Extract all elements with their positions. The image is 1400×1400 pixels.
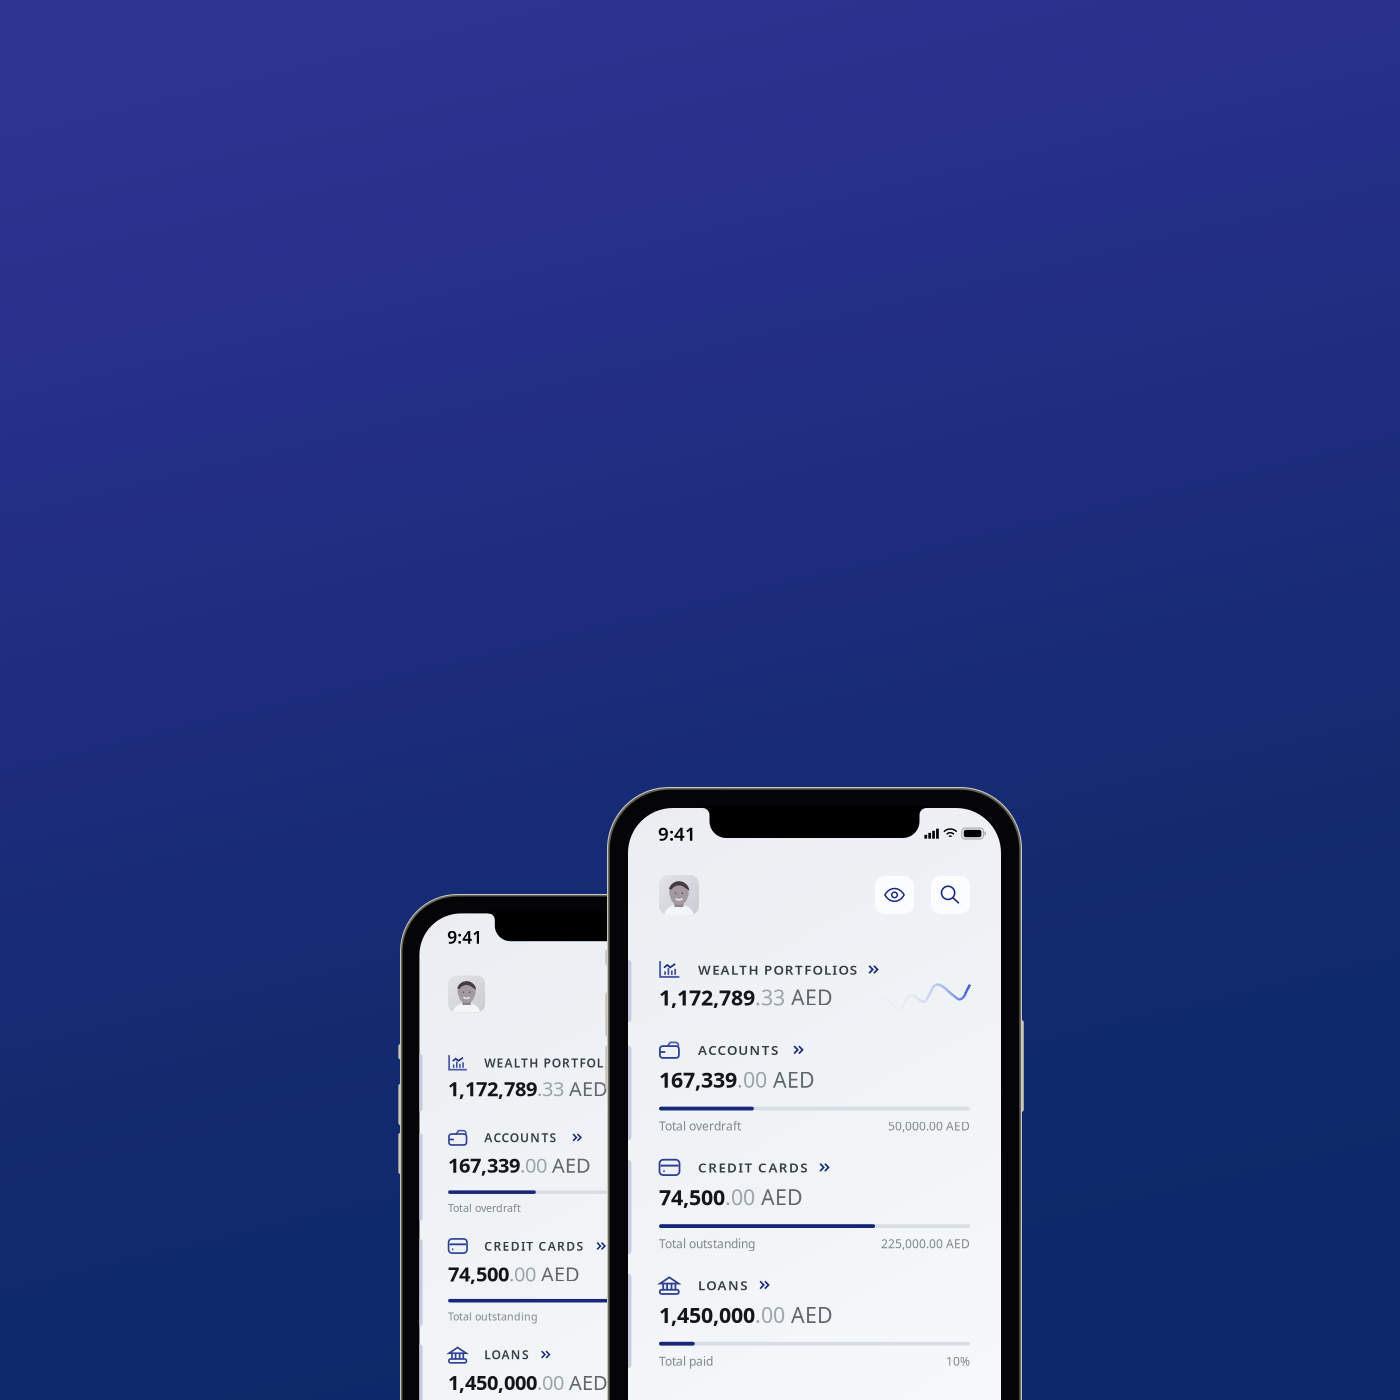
staticText: 9:41 [658, 821, 696, 846]
button[interactable]: WEALTH PORTFOLIOS [628, 915, 1001, 1011]
button[interactable]: CREDIT CARDS [419, 1215, 764, 1323]
staticText: Total outstanding [659, 1235, 755, 1251]
staticText: ACCOUNTS [484, 1129, 557, 1145]
staticText: 1,450,000 [659, 1300, 755, 1329]
staticText: 50,000.00 AED [888, 1118, 970, 1134]
staticText: Total overdraft [448, 1201, 521, 1215]
staticText: 167,339 [659, 1065, 737, 1094]
staticText: .33 [755, 983, 785, 1011]
button[interactable]: LOANS [419, 1323, 764, 1400]
staticText: ACCOUNTS [698, 1041, 778, 1059]
staticText: LOANS [484, 1347, 529, 1362]
button[interactable]: Search [700, 976, 736, 1011]
staticText: .00 [755, 1300, 785, 1329]
staticText: Total overdraft [659, 1118, 741, 1134]
staticText: .33 [537, 1075, 564, 1102]
staticText: .00 [520, 1152, 547, 1178]
staticText: AED [767, 1065, 815, 1094]
staticText: 10% [946, 1353, 970, 1369]
button[interactable]: Profile [448, 975, 485, 1012]
staticText: 1,450,000 [448, 1369, 537, 1395]
staticText: 1,172,789 [448, 1075, 537, 1102]
staticText: Total outstanding [448, 1309, 538, 1324]
staticText: CREDIT CARDS [484, 1238, 583, 1254]
staticText: .00 [537, 1369, 564, 1395]
staticText: 225,000.00 AED [658, 1309, 736, 1324]
staticText: AED [547, 1152, 591, 1178]
staticText: 50,000.00 AED [664, 1201, 736, 1215]
staticText: CREDIT CARDS [698, 1158, 807, 1176]
staticText: .00 [725, 1183, 755, 1211]
staticText: .00 [509, 1260, 536, 1287]
button[interactable]: Search [931, 876, 970, 914]
staticText: 9:41 [447, 925, 482, 948]
button[interactable]: WEALTH PORTFOLIOS [419, 1012, 764, 1102]
staticText: 225,000.00 AED [881, 1235, 970, 1251]
staticText: Total paid [659, 1353, 713, 1369]
staticText: WEALTH PORTFOLIOS [484, 1055, 627, 1071]
staticText: LOANS [698, 1276, 747, 1294]
staticText: 74,500 [448, 1260, 509, 1287]
staticText: .00 [737, 1065, 767, 1094]
staticText: AED [785, 1300, 833, 1329]
staticText: AED [564, 1369, 608, 1395]
button[interactable]: Profile [659, 875, 699, 915]
staticText: AED [755, 1183, 803, 1211]
button[interactable]: Hide balances [875, 876, 914, 914]
button[interactable]: ACCOUNTS [419, 1102, 764, 1215]
staticText: 167,339 [448, 1152, 520, 1178]
staticText: WEALTH PORTFOLIOS [698, 961, 857, 978]
staticText: AED [564, 1075, 608, 1102]
button[interactable]: CREDIT CARDS [628, 1134, 1001, 1251]
staticText: AED [536, 1260, 580, 1287]
button[interactable]: ACCOUNTS [628, 1011, 1001, 1134]
staticText: 1,172,789 [659, 983, 755, 1011]
staticText: 74,500 [659, 1183, 725, 1211]
button[interactable]: LOANS [628, 1251, 1001, 1369]
button[interactable]: Hide balances [648, 976, 684, 1011]
staticText: AED [785, 983, 833, 1011]
